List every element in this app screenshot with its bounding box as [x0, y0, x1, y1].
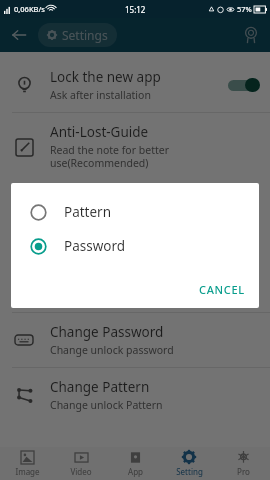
staticText: Image	[15, 466, 40, 477]
button[interactable]: CANCEL	[185, 275, 259, 304]
button[interactable]: Video	[54, 447, 108, 480]
button[interactable]: Password	[11, 229, 259, 263]
staticText: 0,06KB/s	[14, 4, 45, 14]
staticText: App	[128, 466, 143, 477]
staticText: Video	[70, 466, 92, 477]
button[interactable]: Pro	[216, 447, 270, 480]
staticText: Change Password	[50, 323, 164, 341]
staticText: Change Pattern	[50, 378, 150, 396]
staticText: Setting	[176, 466, 203, 477]
staticText: Change unlock Pattern	[50, 398, 163, 412]
staticText: Password	[64, 237, 126, 255]
button[interactable]: Image	[0, 447, 54, 480]
staticText: Change unlock password	[50, 343, 174, 357]
button[interactable]: Lock the new app	[0, 58, 270, 112]
button[interactable]: Back	[8, 24, 30, 46]
button[interactable]: Anti-Lost-Guide	[0, 113, 270, 180]
staticText: Pro	[237, 466, 250, 477]
staticText: Anti-Lost-Guide	[50, 123, 149, 141]
button[interactable]: Pattern	[11, 195, 259, 229]
staticText: Ask after installation	[50, 88, 151, 102]
staticText: Read the note for better use(Recommended…	[50, 143, 169, 170]
button[interactable]: Toggle	[226, 78, 260, 92]
staticText: Settings	[62, 27, 108, 43]
button[interactable]: App	[108, 447, 162, 480]
button[interactable]: Setting	[162, 447, 216, 480]
staticText: CANCEL	[199, 282, 245, 297]
button[interactable]: Change Password	[0, 313, 270, 367]
staticText: Lock the new app	[50, 68, 161, 86]
button[interactable]: Settings	[38, 23, 117, 47]
button[interactable]: Award	[239, 23, 263, 47]
staticText: 15:12	[125, 4, 146, 15]
staticText: Pattern	[64, 203, 112, 221]
staticText: 57%	[237, 4, 252, 14]
button[interactable]: Change Pattern	[0, 368, 270, 422]
